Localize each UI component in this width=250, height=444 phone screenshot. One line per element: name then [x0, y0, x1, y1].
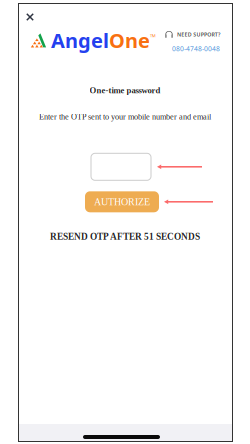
staticText: One-time password — [89, 86, 160, 95]
staticText: RESEND OTP AFTER 51 SECONDS — [50, 231, 200, 242]
staticText: AUTHORIZE — [94, 196, 150, 207]
button[interactable]: One-time password field — [91, 153, 151, 180]
button[interactable]: AUTHORIZE — [85, 191, 159, 212]
staticText: Enter the OTP sent to your mobile number… — [39, 112, 211, 121]
staticText: TM — [150, 33, 156, 38]
staticText: NEED SUPPORT? — [177, 31, 220, 38]
button[interactable]: Close — [23, 10, 37, 24]
staticText: Angel — [51, 27, 109, 54]
staticText: 080-4748-0048 — [172, 44, 220, 53]
staticText: One — [109, 27, 150, 54]
button[interactable]: NEED SUPPORT? — [165, 27, 220, 53]
